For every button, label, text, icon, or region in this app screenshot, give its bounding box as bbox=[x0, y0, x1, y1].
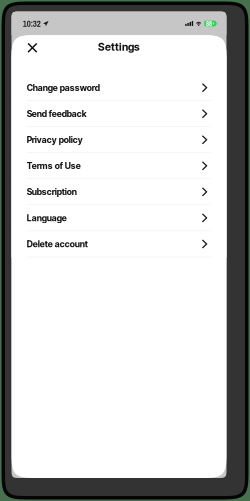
button[interactable]: Change password bbox=[11, 75, 226, 101]
button[interactable]: Close bbox=[21, 37, 43, 59]
staticText: Send feedback bbox=[27, 108, 87, 119]
button[interactable]: Send feedback bbox=[11, 101, 226, 127]
staticText: Language bbox=[27, 213, 67, 223]
button[interactable]: Privacy policy bbox=[11, 127, 226, 153]
staticText: 10:32 bbox=[23, 18, 41, 29]
staticText: Terms of Use bbox=[27, 160, 81, 171]
button[interactable]: Terms of Use bbox=[11, 153, 226, 179]
staticText: Delete account bbox=[27, 239, 88, 249]
staticText: Change password bbox=[27, 82, 100, 93]
staticText: Privacy policy bbox=[27, 134, 83, 145]
staticText: 88 bbox=[206, 19, 212, 28]
button[interactable]: Subscription bbox=[11, 179, 226, 205]
button[interactable]: Language bbox=[11, 205, 226, 231]
staticText: Settings bbox=[98, 41, 140, 53]
staticText: Subscription bbox=[27, 187, 77, 197]
button[interactable]: Delete account bbox=[11, 231, 226, 257]
